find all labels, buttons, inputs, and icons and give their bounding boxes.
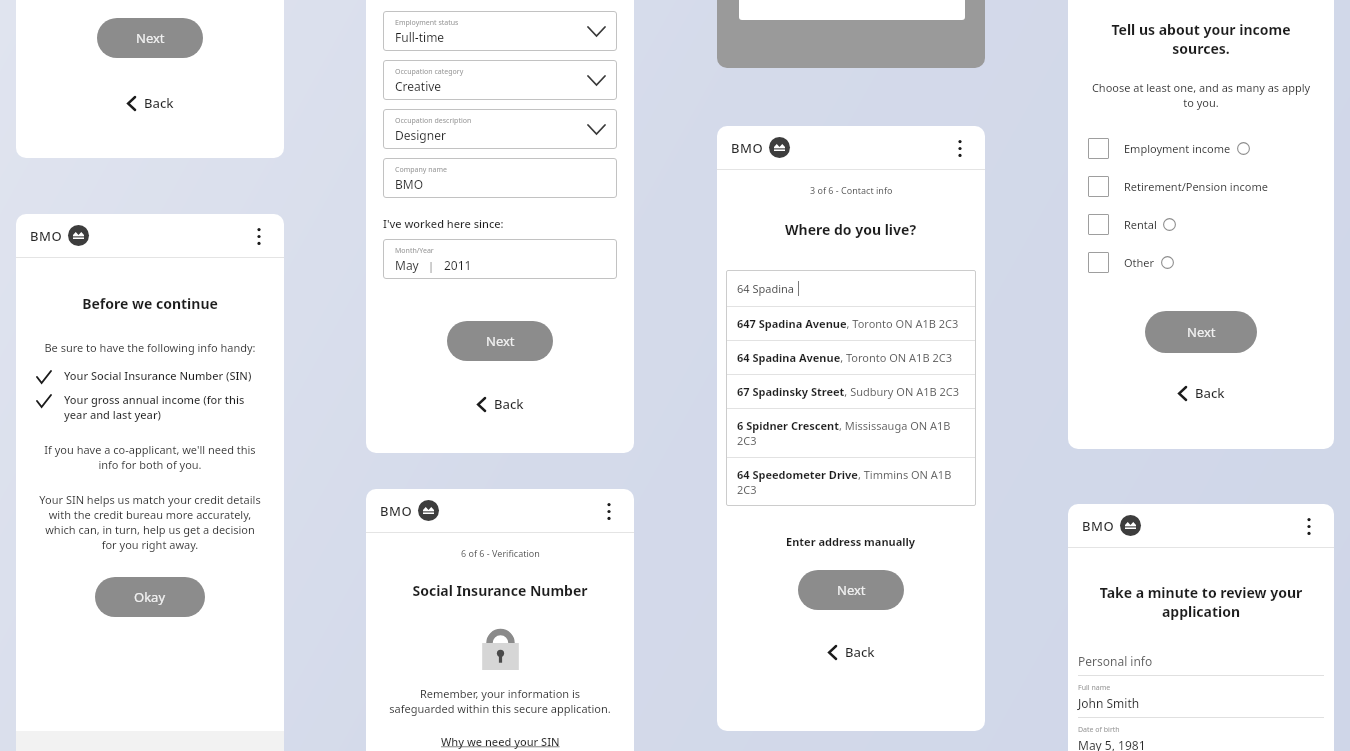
staticText: Next <box>1187 323 1216 341</box>
staticText: Choose at least one, and as many as appl… <box>1088 80 1314 110</box>
staticText: Your Social Insurance Number (SIN) <box>64 368 252 383</box>
staticText: Other <box>1124 255 1155 270</box>
staticText: BMO <box>395 176 424 192</box>
button[interactable]: More options <box>947 135 973 161</box>
staticText: BMO <box>1082 517 1115 535</box>
staticText: 64 Speedometer Drive, Timmins ON A1B 2C3 <box>737 467 965 497</box>
staticText: Back <box>144 94 174 112</box>
button[interactable]: Occupation description <box>383 109 617 149</box>
staticText: Before we continue <box>82 294 218 313</box>
staticText: Back <box>845 643 875 661</box>
staticText: 67 Spadinsky Street, Sudbury ON A1B 2C3 <box>737 384 960 399</box>
staticText: Employment status <box>395 18 459 28</box>
staticText: Occupation category <box>395 67 464 77</box>
staticText: Date of birth <box>1078 725 1120 735</box>
button[interactable]: Date of birth <box>1078 718 1324 751</box>
staticText: Back <box>494 395 524 413</box>
button[interactable]: Employment income <box>1088 132 1314 165</box>
staticText: May 5, 1981 <box>1078 737 1146 751</box>
staticText: Social Insurance Number <box>412 581 588 600</box>
staticText: Your gross annual income (for this year … <box>64 392 263 422</box>
button[interactable]: More options <box>596 498 622 524</box>
staticText: Okay <box>134 588 166 606</box>
staticText: Retirement/Pension income <box>1124 179 1268 194</box>
staticText: Tell us about your income sources. <box>1088 20 1314 58</box>
button[interactable]: Back <box>119 90 182 116</box>
staticText: Back <box>1195 384 1225 402</box>
staticText: Full name <box>1078 683 1111 693</box>
button[interactable]: Other <box>1088 246 1314 279</box>
staticText: Be sure to have the following info handy… <box>37 340 263 355</box>
button[interactable]: Back <box>469 391 532 417</box>
staticText: Rental <box>1124 217 1157 232</box>
staticText: BMO <box>30 227 63 245</box>
staticText: 6 Spidner Crescent, Mississauga ON A1B 2… <box>737 418 965 448</box>
staticText: 6 of 6 - Verification <box>461 547 540 559</box>
button[interactable]: More options <box>246 223 272 249</box>
button[interactable]: Next <box>447 321 553 361</box>
button[interactable]: 6 Spidner Crescent, Mississauga ON A1B 2… <box>726 409 976 457</box>
button[interactable]: Enter address manually <box>786 534 916 549</box>
staticText: Month/Year <box>395 246 434 256</box>
button[interactable]: Employment status <box>383 11 617 51</box>
staticText: Next <box>837 581 866 599</box>
staticText: BMO <box>731 139 764 157</box>
button[interactable]: BMO <box>380 500 439 521</box>
staticText: John Smith <box>1078 695 1140 711</box>
button[interactable]: BMO <box>1082 515 1141 536</box>
button[interactable]: Why we need your SIN <box>441 734 560 749</box>
button[interactable]: Month/Year <box>383 239 617 279</box>
staticText: I've worked here since: <box>383 216 624 231</box>
button[interactable]: Back <box>820 639 883 665</box>
staticText: 3 of 6 - Contact info <box>810 184 893 196</box>
staticText: Take a minute to review your application <box>1078 583 1324 621</box>
staticText: Next <box>136 29 165 47</box>
button[interactable]: Full name <box>1078 676 1324 717</box>
staticText: Full-time <box>395 29 445 45</box>
button[interactable]: 647 Spadina Avenue, Toronto ON A1B 2C3 <box>726 307 976 340</box>
staticText: Designer <box>395 127 446 143</box>
button[interactable]: Next <box>1145 311 1257 353</box>
button[interactable]: BMO <box>731 137 790 158</box>
staticText: Remember, your information is safeguarde… <box>386 686 614 716</box>
staticText: May <box>395 257 419 273</box>
button[interactable]: 64 Spadina Avenue, Toronto ON A1B 2C3 <box>726 341 976 374</box>
staticText: Employment income <box>1124 141 1231 156</box>
staticText: Next <box>486 332 515 350</box>
staticText: 64 Spadina Avenue, Toronto ON A1B 2C3 <box>737 350 952 365</box>
staticText: Your SIN helps us match your credit deta… <box>37 492 263 552</box>
button[interactable]: Okay <box>95 577 205 617</box>
staticText: Personal info <box>1078 653 1153 669</box>
button[interactable]: More options <box>1296 513 1322 539</box>
button[interactable]: 64 Speedometer Drive, Timmins ON A1B 2C3 <box>726 458 976 506</box>
staticText: BMO <box>380 502 413 520</box>
staticText: 647 Spadina Avenue, Toronto ON A1B 2C3 <box>737 316 959 331</box>
staticText: | <box>428 258 435 273</box>
staticText: Where do you live? <box>785 220 917 239</box>
button[interactable]: Back <box>1170 380 1233 406</box>
staticText: If you have a co-applicant, we'll need t… <box>37 442 263 472</box>
button[interactable]: 67 Spadinsky Street, Sudbury ON A1B 2C3 <box>726 375 976 408</box>
button[interactable]: Next <box>97 18 203 58</box>
button[interactable]: Company name <box>383 158 617 198</box>
button[interactable]: Next <box>798 570 904 610</box>
staticText: Occupation description <box>395 116 472 126</box>
staticText: 2011 <box>444 257 472 273</box>
staticText: 64 Spadina <box>737 281 794 296</box>
button[interactable]: Retirement/Pension income <box>1088 170 1314 203</box>
staticText: Company name <box>395 165 447 175</box>
button[interactable]: Rental <box>1088 208 1314 241</box>
button[interactable]: BMO <box>30 225 89 246</box>
button[interactable]: Occupation category <box>383 60 617 100</box>
staticText: Creative <box>395 78 442 94</box>
button[interactable]: 64 Spadina <box>726 270 976 306</box>
